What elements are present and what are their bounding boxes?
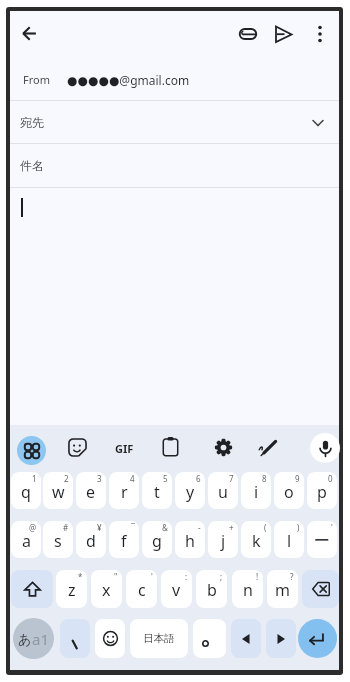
button[interactable] <box>266 619 296 658</box>
button[interactable]: r <box>109 472 139 509</box>
staticText: ) <box>297 522 300 533</box>
staticText: ( <box>264 522 267 533</box>
button[interactable] <box>17 436 46 465</box>
staticText: # <box>63 522 69 533</box>
staticText: 3 <box>97 473 102 484</box>
staticText: ー <box>314 531 330 551</box>
button[interactable] <box>60 619 90 658</box>
staticText: e <box>86 481 96 503</box>
staticText: k <box>252 530 261 552</box>
staticText: & <box>162 522 168 533</box>
button[interactable] <box>310 433 340 463</box>
staticText: b <box>207 579 217 601</box>
staticText: - <box>198 522 201 533</box>
button[interactable]: x <box>91 570 122 608</box>
staticText: 7 <box>229 473 234 484</box>
staticText: y <box>186 481 195 503</box>
button[interactable] <box>13 618 54 659</box>
button[interactable]: GIF <box>112 439 136 457</box>
staticText: s <box>54 530 62 552</box>
button[interactable]: h <box>175 521 205 558</box>
staticText: ‾ <box>131 522 135 533</box>
button[interactable] <box>214 438 233 457</box>
staticText: w <box>52 481 65 503</box>
staticText: m <box>275 579 290 601</box>
staticText: u <box>218 481 228 503</box>
button[interactable] <box>273 24 293 44</box>
staticText: ●●●●●@gmail.com <box>67 72 190 88</box>
button[interactable] <box>68 438 87 457</box>
staticText: g <box>152 530 162 552</box>
staticText: t <box>154 481 160 503</box>
button[interactable]: q <box>11 472 41 509</box>
staticText: ' <box>331 522 333 533</box>
button[interactable]: a <box>11 521 41 558</box>
staticText: o <box>284 481 294 503</box>
button[interactable]: d <box>76 521 106 558</box>
button[interactable]: l <box>274 521 304 558</box>
staticText: : <box>185 571 188 582</box>
button[interactable]: z <box>56 570 87 608</box>
button[interactable] <box>298 619 337 658</box>
staticText: ? <box>290 571 294 582</box>
button[interactable]: m <box>267 570 298 608</box>
button[interactable]: i <box>241 472 271 509</box>
button[interactable] <box>238 24 258 44</box>
staticText: z <box>68 579 76 601</box>
staticText: c <box>138 579 146 601</box>
staticText: From <box>23 72 50 87</box>
button[interactable]: b <box>196 570 227 608</box>
button[interactable] <box>161 437 180 457</box>
button[interactable]: c <box>126 570 157 608</box>
button[interactable]: f <box>109 521 139 558</box>
staticText: あ <box>18 631 32 647</box>
staticText: ¥ <box>97 522 102 533</box>
staticText: l <box>287 530 292 552</box>
staticText: 日本語 <box>143 632 175 645</box>
staticText: a <box>22 530 31 552</box>
staticText: + <box>229 522 234 533</box>
button[interactable] <box>11 570 53 608</box>
button[interactable]: e <box>76 472 106 509</box>
button[interactable]: n <box>232 570 263 608</box>
staticText: h <box>185 530 195 552</box>
button[interactable]: s <box>43 521 73 558</box>
button[interactable]: k <box>241 521 271 558</box>
button[interactable]: 日本語 <box>130 619 188 658</box>
button[interactable]: o <box>274 472 304 509</box>
button[interactable]: j <box>208 521 238 558</box>
button[interactable] <box>313 24 327 44</box>
button[interactable]: ー <box>307 521 337 558</box>
button[interactable]: 宛先 <box>10 101 339 144</box>
staticText: GIF <box>115 441 134 456</box>
button[interactable]: t <box>142 472 172 509</box>
staticText: ! <box>256 571 259 582</box>
staticText: 9 <box>295 473 300 484</box>
staticText: n <box>243 579 253 601</box>
button[interactable]: y <box>175 472 205 509</box>
staticText: 8 <box>262 473 267 484</box>
staticText: f <box>121 530 127 552</box>
staticText: ; <box>220 571 223 582</box>
staticText: * <box>78 571 83 582</box>
staticText: " <box>114 571 118 582</box>
button[interactable] <box>231 619 261 658</box>
button[interactable] <box>193 619 226 658</box>
staticText: j <box>221 530 226 552</box>
button[interactable]: g <box>142 521 172 558</box>
button[interactable] <box>302 570 339 608</box>
button[interactable] <box>95 619 125 658</box>
staticText: a1 <box>32 629 49 649</box>
button[interactable]: From <box>10 58 339 101</box>
staticText: @ <box>29 522 37 533</box>
button[interactable]: 件名 <box>10 144 339 187</box>
button[interactable]: w <box>43 472 73 509</box>
button[interactable]: p <box>307 472 337 509</box>
staticText: 件名 <box>20 158 44 173</box>
staticText: 1 <box>32 473 37 484</box>
button[interactable] <box>20 24 39 43</box>
staticText: 4 <box>130 473 135 484</box>
button[interactable]: v <box>161 570 192 608</box>
button[interactable] <box>258 438 278 457</box>
button[interactable]: u <box>208 472 238 509</box>
